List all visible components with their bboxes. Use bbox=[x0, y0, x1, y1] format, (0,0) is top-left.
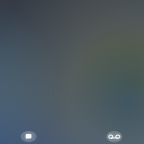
button[interactable]: Messages bbox=[21, 131, 36, 142]
button[interactable]: Voicemail bbox=[106, 131, 122, 142]
